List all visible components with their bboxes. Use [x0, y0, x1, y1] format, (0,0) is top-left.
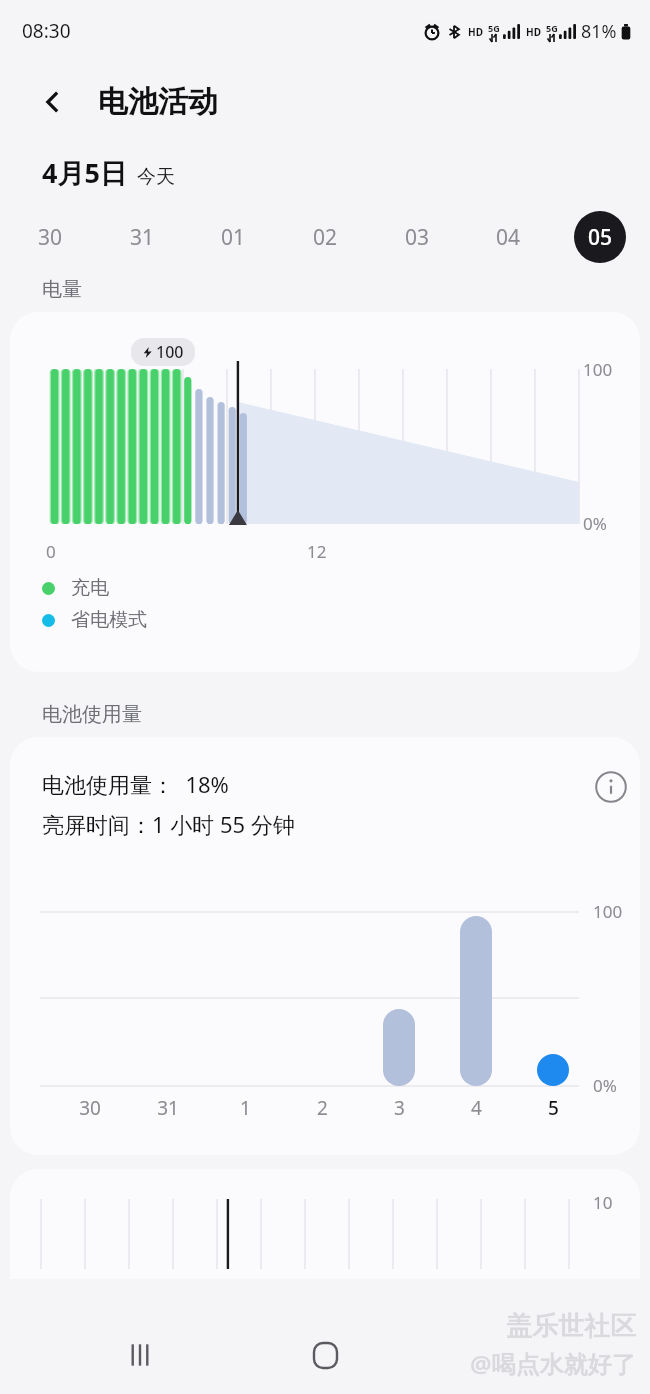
staticText: 电量: [42, 277, 82, 302]
staticText: 4月5日: [42, 154, 127, 191]
button[interactable]: 04: [482, 211, 534, 263]
button[interactable]: 05: [574, 211, 626, 263]
staticText: 12: [307, 540, 327, 563]
staticText: 5G: [488, 22, 500, 34]
staticText: 亮屏时间：1 小时 55 分钟: [42, 809, 295, 839]
staticText: 电池活动: [98, 83, 218, 121]
button[interactable]: Back: [30, 79, 76, 125]
staticText: 充电: [71, 576, 109, 600]
button[interactable]: 31: [116, 211, 168, 263]
button[interactable]: Recent apps: [108, 1323, 172, 1387]
staticText: 02: [313, 223, 338, 252]
staticText: 电池使用量: [42, 702, 142, 727]
staticText: HD: [468, 25, 483, 39]
staticText: 03: [405, 223, 430, 252]
button[interactable]: 100: [10, 312, 640, 672]
staticText: 01: [221, 223, 246, 252]
staticText: 省电模式: [71, 608, 147, 632]
button[interactable]: 10: [10, 1169, 640, 1279]
staticText: 31: [130, 223, 155, 252]
staticText: 4: [471, 1095, 482, 1121]
staticText: 盖乐世社区: [506, 1310, 636, 1343]
button[interactable]: 电池使用量： 18%: [10, 737, 640, 1155]
staticText: 05: [588, 223, 613, 252]
button[interactable]: Information: [585, 761, 637, 813]
staticText: 电池使用量： 18%: [42, 769, 229, 799]
staticText: @喝点水就好了: [470, 1347, 636, 1380]
staticText: 1: [240, 1095, 251, 1121]
staticText: 04: [496, 223, 521, 252]
button[interactable]: Home: [293, 1323, 357, 1387]
staticText: 100: [156, 341, 184, 363]
staticText: 0%: [593, 1074, 617, 1097]
staticText: 0%: [583, 512, 607, 535]
staticText: 5: [548, 1095, 559, 1121]
button[interactable]: 03: [391, 211, 443, 263]
staticText: 2: [317, 1095, 328, 1121]
staticText: 100: [583, 358, 613, 381]
staticText: 0: [46, 540, 56, 563]
staticText: 今天: [137, 165, 175, 189]
staticText: 100: [593, 900, 623, 923]
staticText: 30: [79, 1095, 101, 1121]
staticText: 10: [593, 1191, 613, 1214]
staticText: 31: [157, 1095, 179, 1121]
staticText: 3: [394, 1095, 405, 1121]
staticText: HD: [526, 25, 541, 39]
staticText: 08:30: [22, 18, 71, 44]
button[interactable]: 30: [24, 211, 76, 263]
staticText: 81%: [581, 19, 617, 44]
button[interactable]: 01: [207, 211, 259, 263]
button[interactable]: 02: [299, 211, 351, 263]
staticText: 5G: [546, 22, 558, 34]
staticText: 30: [38, 223, 63, 252]
